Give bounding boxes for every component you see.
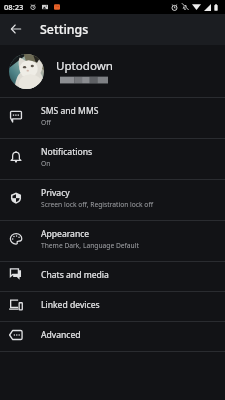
- button[interactable]: Linked devices: [0, 292, 225, 321]
- staticText: Chats and media: [41, 269, 109, 281]
- staticText: Appearance: [41, 228, 90, 240]
- staticText: Linked devices: [41, 299, 100, 311]
- staticText: Screen lock off, Registration lock off: [41, 200, 154, 209]
- staticText: On: [41, 159, 51, 168]
- button[interactable]: Appearance: [0, 221, 225, 261]
- staticText: Uptodown: [56, 58, 113, 74]
- button[interactable]: Privacy: [0, 180, 225, 220]
- staticText: 08:23: [4, 2, 24, 12]
- button[interactable]: SMS and MMS: [0, 98, 225, 138]
- staticText: Notifications: [41, 146, 93, 158]
- staticText: Theme Dark, Language Default: [41, 241, 139, 250]
- button[interactable]: Chats and media: [0, 262, 225, 291]
- staticText: Advanced: [41, 329, 81, 341]
- staticText: Settings: [40, 21, 89, 38]
- staticText: SMS and MMS: [41, 105, 99, 117]
- staticText: Privacy: [41, 187, 70, 199]
- button[interactable]: Notifications: [0, 139, 225, 179]
- button[interactable]: Advanced: [0, 322, 225, 351]
- staticText: Off: [41, 118, 51, 127]
- button[interactable]: Navigate up: [4, 18, 28, 42]
- button[interactable]: Uptodown: [0, 45, 225, 97]
